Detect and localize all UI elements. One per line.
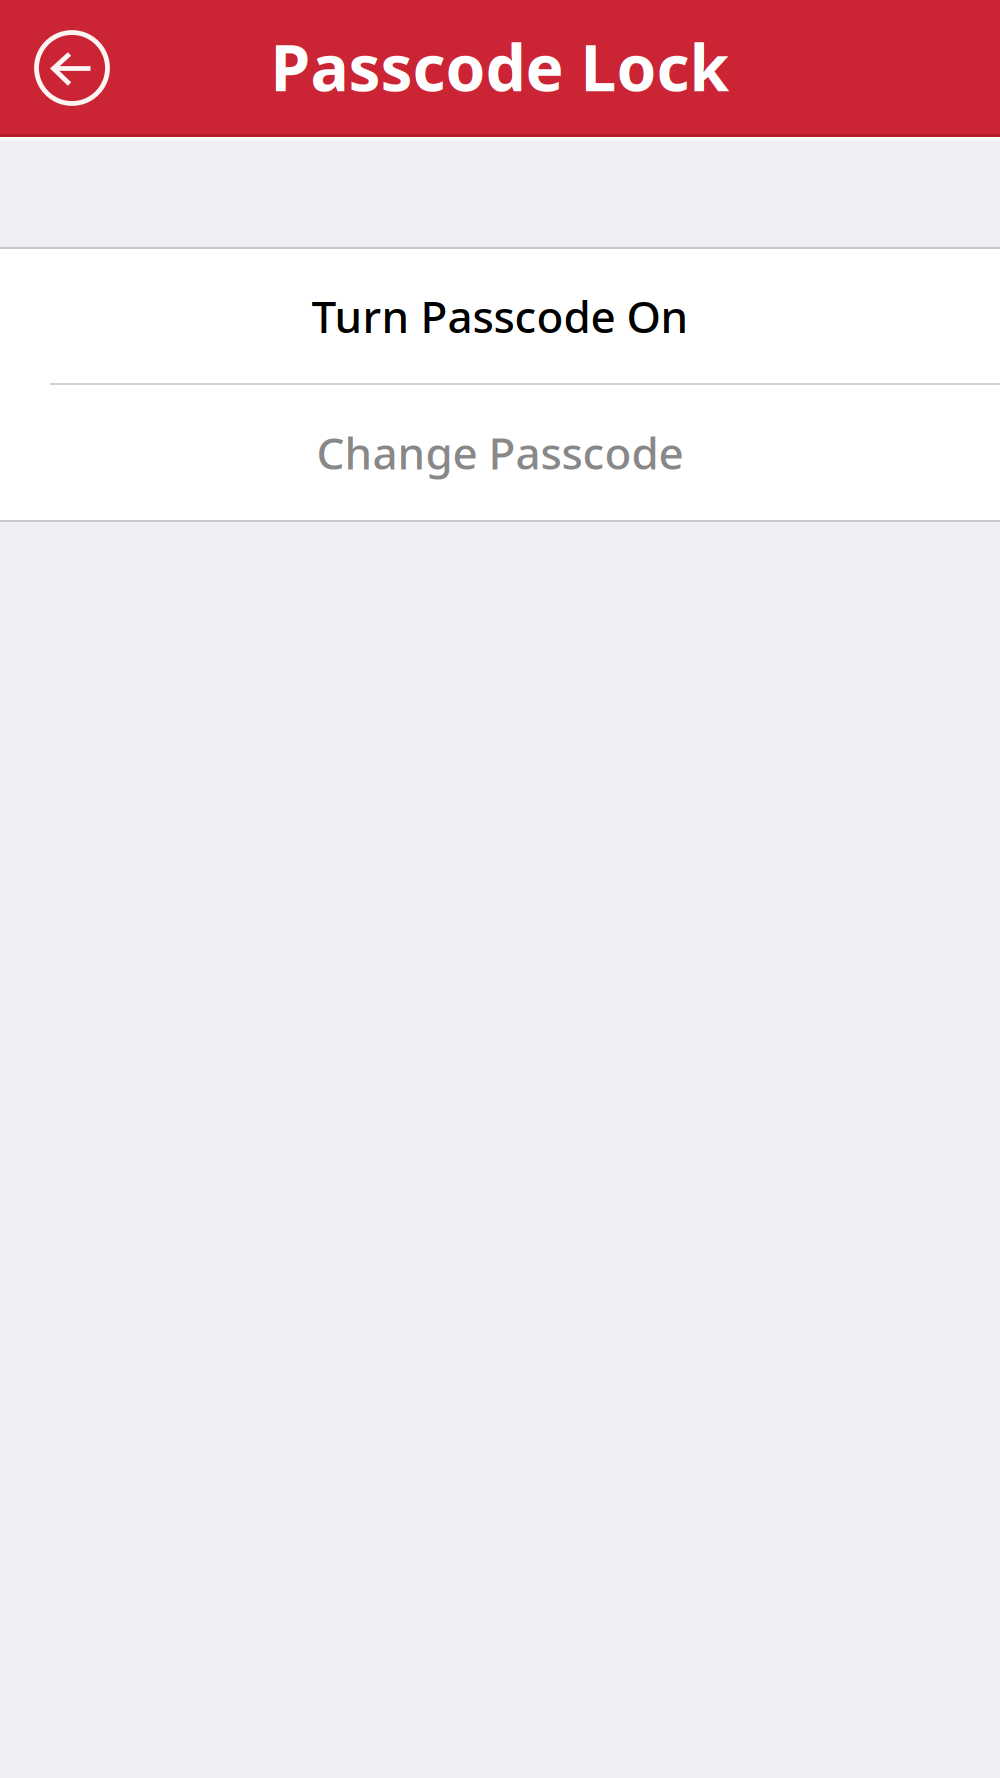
staticText: Change Passcode xyxy=(316,423,683,482)
staticText: Passcode Lock xyxy=(270,24,729,109)
button[interactable]: Change Passcode xyxy=(0,385,1000,520)
staticText: Turn Passcode On xyxy=(311,287,688,345)
button[interactable]: Turn Passcode On xyxy=(0,249,1000,383)
button[interactable]: Back xyxy=(32,27,112,107)
